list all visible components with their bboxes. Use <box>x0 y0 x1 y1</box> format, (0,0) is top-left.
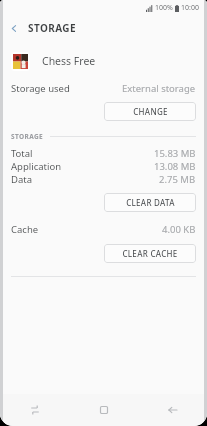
staticText: 10:00 <box>181 3 199 13</box>
staticText: CHANGE <box>133 106 168 117</box>
button[interactable]: Back <box>138 394 207 426</box>
button[interactable]: CLEAR DATA <box>104 193 196 212</box>
staticText: Data <box>11 173 33 186</box>
staticText: Total <box>11 147 33 160</box>
staticText: Application <box>11 160 62 173</box>
button[interactable]: Chess Free <box>0 44 207 78</box>
staticText: 13.08 MB <box>154 160 196 173</box>
button[interactable]: Back <box>0 16 28 40</box>
staticText: CLEAR CACHE <box>122 248 178 259</box>
staticText: STORAGE <box>28 21 76 35</box>
staticText: 4.00 KB <box>162 223 196 236</box>
staticText: 2.75 MB <box>159 173 196 186</box>
staticText: Chess Free <box>42 54 96 68</box>
staticText: External storage <box>122 82 196 95</box>
button[interactable]: Recents <box>0 394 69 426</box>
staticText: STORAGE <box>11 132 44 141</box>
staticText: Storage used <box>11 82 70 95</box>
staticText: 15.83 MB <box>154 147 196 160</box>
staticText: CLEAR DATA <box>126 197 175 208</box>
staticText: 100% <box>155 3 173 13</box>
staticText: Cache <box>11 223 39 236</box>
button[interactable]: CHANGE <box>104 102 196 121</box>
button[interactable]: Home <box>69 394 138 426</box>
button[interactable]: CLEAR CACHE <box>104 244 196 263</box>
